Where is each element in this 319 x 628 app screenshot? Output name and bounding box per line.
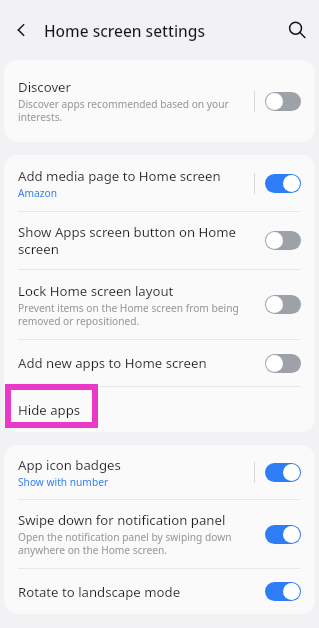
- staticText: Discover apps recommended based on your …: [18, 97, 229, 124]
- staticText: Home screen settings: [44, 20, 275, 41]
- staticText: Prevent items on the Home screen from be…: [18, 301, 239, 328]
- button[interactable]: Swipe down for notification panel: [4, 500, 315, 568]
- button[interactable]: Off: [265, 231, 301, 250]
- button[interactable]: On: [265, 463, 301, 482]
- button[interactable]: On: [265, 174, 301, 193]
- staticText: Hide apps: [18, 401, 81, 419]
- button[interactable]: On: [265, 525, 301, 544]
- button[interactable]: Off: [265, 354, 301, 373]
- button[interactable]: Rotate to landscape mode: [4, 569, 315, 614]
- staticText: Open the notification panel by swiping d…: [18, 530, 232, 557]
- staticText: Rotate to landscape mode: [18, 583, 181, 601]
- staticText: Show with number: [18, 475, 109, 489]
- button[interactable]: Hide apps: [4, 387, 315, 432]
- staticText: Add media page to Home screen: [18, 167, 221, 185]
- button[interactable]: Off: [265, 295, 301, 314]
- button[interactable]: Search: [275, 8, 319, 52]
- button[interactable]: App icon badges: [4, 445, 315, 499]
- button[interactable]: Add media page to Home screen: [4, 155, 315, 211]
- button[interactable]: On: [265, 582, 301, 601]
- button[interactable]: Discover: [4, 60, 315, 142]
- button[interactable]: Back: [0, 8, 44, 52]
- staticText: Amazon: [18, 186, 57, 200]
- staticText: Discover: [18, 78, 71, 96]
- button[interactable]: Off: [265, 92, 301, 111]
- button[interactable]: Show Apps screen button on Home screen: [4, 212, 315, 269]
- button[interactable]: Add new apps to Home screen: [4, 340, 315, 386]
- button[interactable]: Lock Home screen layout: [4, 270, 315, 339]
- staticText: Add new apps to Home screen: [18, 354, 207, 372]
- staticText: Show Apps screen button on Home screen: [18, 223, 236, 258]
- staticText: Swipe down for notification panel: [18, 511, 226, 529]
- staticText: Lock Home screen layout: [18, 282, 174, 300]
- staticText: App icon badges: [18, 456, 121, 474]
